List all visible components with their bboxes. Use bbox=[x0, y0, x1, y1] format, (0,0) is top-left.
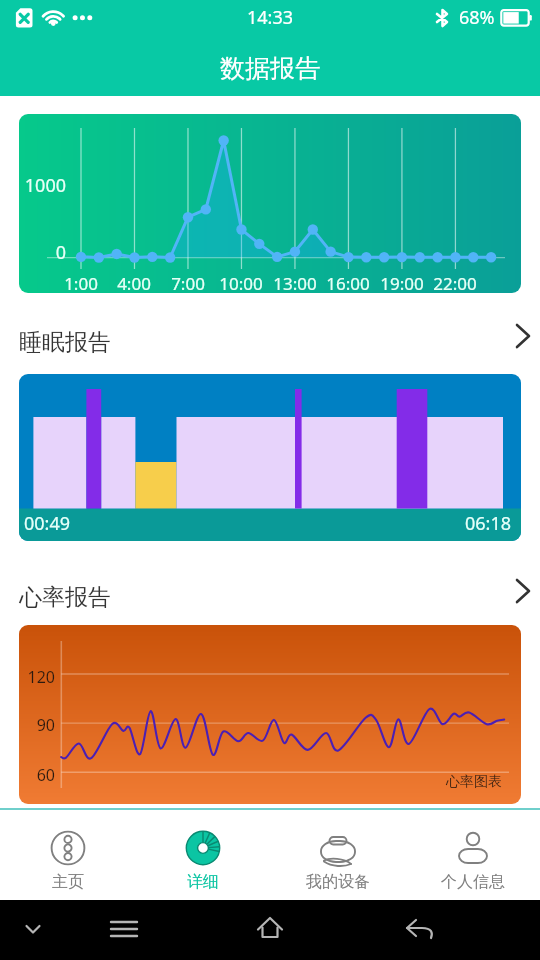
staticText: 主页 bbox=[52, 872, 84, 892]
staticText: 0 bbox=[19, 240, 66, 265]
staticText: 16:00 bbox=[324, 272, 372, 293]
staticText: 7:00 bbox=[164, 272, 212, 293]
staticText: 10:00 bbox=[217, 272, 265, 293]
staticText: 06:18 bbox=[465, 511, 512, 536]
button[interactable]: 步数图表 bbox=[19, 114, 521, 293]
staticText: 60 bbox=[19, 764, 55, 786]
button[interactable]: 心率报告详情 bbox=[0, 577, 540, 621]
staticText: 14:33 bbox=[247, 5, 294, 30]
button[interactable]: 睡眠报告详情 bbox=[0, 322, 540, 366]
staticText: 4:00 bbox=[110, 272, 158, 293]
staticText: 90 bbox=[19, 714, 55, 736]
staticText: 睡眠报告 bbox=[19, 328, 111, 357]
staticText: 13:00 bbox=[271, 272, 319, 293]
staticText: 心率报告 bbox=[19, 583, 111, 612]
staticText: 个人信息 bbox=[441, 872, 505, 892]
staticText: 00:49 bbox=[24, 511, 71, 536]
staticText: 22:00 bbox=[431, 272, 479, 293]
staticText: 19:00 bbox=[378, 272, 426, 293]
staticText: 详细 bbox=[187, 872, 219, 892]
button[interactable]: 个人信息 bbox=[405, 810, 540, 900]
staticText: 我的设备 bbox=[306, 872, 370, 892]
staticText: 数据报告 bbox=[220, 53, 320, 84]
staticText: 120 bbox=[19, 666, 55, 688]
staticText: 1:00 bbox=[57, 272, 105, 293]
button[interactable]: 心率图表 bbox=[19, 625, 521, 804]
staticText: 心率图表 bbox=[446, 773, 502, 791]
staticText: 1000 bbox=[19, 173, 66, 198]
staticText: 68% bbox=[459, 5, 495, 30]
button[interactable]: 我的设备 bbox=[270, 810, 405, 900]
button[interactable]: 主页 bbox=[0, 810, 135, 900]
button[interactable]: 详细 bbox=[135, 810, 270, 900]
button[interactable]: 睡眠图表 bbox=[19, 374, 521, 541]
